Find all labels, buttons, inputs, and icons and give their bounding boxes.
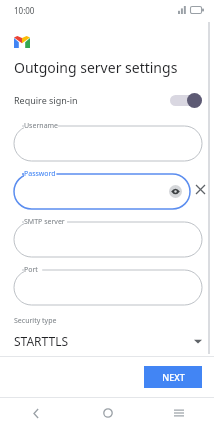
button[interactable]: Username: [14, 121, 202, 161]
button[interactable]: Require sign-in toggle: [170, 92, 202, 108]
staticText: Password: [24, 169, 56, 179]
button[interactable]: Recent apps: [143, 398, 214, 428]
button[interactable]: NEXT: [144, 366, 202, 388]
staticText: Security type: [14, 316, 57, 326]
button[interactable]: SMTP server: [14, 217, 202, 257]
button[interactable]: Clear password: [190, 179, 210, 199]
button[interactable]: Require sign-in: [0, 90, 214, 110]
button[interactable]: Port: [14, 265, 202, 305]
staticText: SMTP server: [24, 217, 65, 227]
staticText: Username: [24, 121, 59, 131]
button[interactable]: Security type: [0, 316, 214, 349]
staticText: Port: [24, 265, 38, 275]
staticText: Outgoing server settings: [14, 58, 178, 77]
staticText: NEXT: [162, 371, 185, 383]
staticText: 10:00: [14, 5, 35, 16]
button[interactable]: Home: [72, 398, 143, 428]
button[interactable]: Password: [14, 169, 190, 209]
staticText: STARTTLS: [14, 333, 194, 349]
button[interactable]: Show password: [169, 185, 182, 198]
button[interactable]: Back: [0, 398, 72, 428]
staticText: Require sign-in: [14, 94, 170, 106]
